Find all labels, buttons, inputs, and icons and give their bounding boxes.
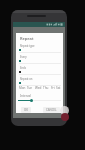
button[interactable]: CANCEL <box>43 107 60 113</box>
button[interactable]: Tue <box>27 86 33 90</box>
staticText: Repeat on <box>20 77 33 81</box>
button[interactable]: Repeat on <box>16 77 63 88</box>
button[interactable]: Add <box>61 113 69 121</box>
staticText: Repeat type <box>20 44 35 48</box>
button[interactable]: Every <box>16 55 63 66</box>
staticText: OK <box>24 108 28 112</box>
staticText: Sat <box>56 86 61 90</box>
button[interactable]: Ends <box>16 66 63 77</box>
staticText: Ends <box>20 66 26 70</box>
button[interactable]: Repeat type <box>16 44 63 55</box>
staticText: Thu <box>43 86 49 90</box>
button[interactable]: OK <box>21 107 31 113</box>
staticText: Interval <box>20 94 31 98</box>
staticText: Mon <box>19 86 26 90</box>
button[interactable]: Wed <box>35 86 42 90</box>
staticText: Repeat <box>20 36 34 41</box>
staticText: CANCEL <box>46 108 57 112</box>
staticText: Fri <box>51 86 55 90</box>
button[interactable]: Sat <box>56 86 61 90</box>
button[interactable]: Thu <box>43 86 49 90</box>
staticText: Every <box>20 55 27 59</box>
staticText: Wed <box>35 86 42 90</box>
button[interactable]: Mon <box>19 86 26 90</box>
staticText: Tue <box>27 86 33 90</box>
button[interactable]: Fri <box>51 86 55 90</box>
